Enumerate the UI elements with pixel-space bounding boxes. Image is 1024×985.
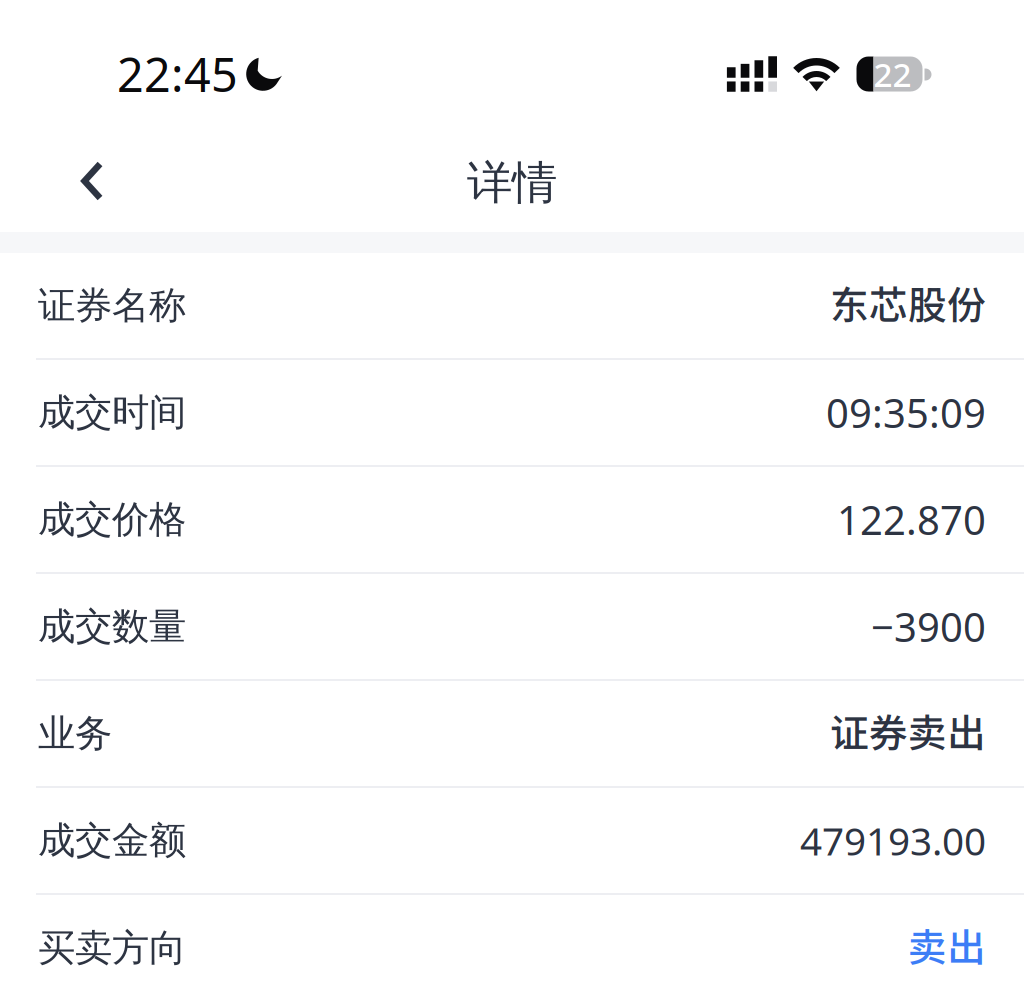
staticText: 详情 <box>467 155 557 211</box>
button[interactable]: 成交价格 <box>0 467 1024 572</box>
button[interactable]: 证券名称 <box>0 253 1024 358</box>
staticText: 22:45 <box>117 43 238 105</box>
staticText: 122.870 <box>837 493 986 546</box>
staticText: 买卖方向 <box>38 925 186 971</box>
staticText: 22 <box>873 52 911 96</box>
staticText: 卖出 <box>908 917 986 973</box>
staticText: 证券名称 <box>38 283 186 328</box>
button[interactable]: 成交时间 <box>0 360 1024 465</box>
button[interactable]: 成交数量 <box>0 574 1024 679</box>
button[interactable]: 业务 <box>0 681 1024 786</box>
button[interactable]: 成交金额 <box>0 788 1024 893</box>
button[interactable]: Back <box>63 144 121 218</box>
staticText: 成交时间 <box>38 390 186 435</box>
staticText: 09:35:09 <box>826 386 986 439</box>
staticText: 成交金额 <box>38 818 186 863</box>
staticText: 成交数量 <box>38 604 186 649</box>
staticText: 成交价格 <box>38 497 186 542</box>
button[interactable]: 买卖方向 <box>0 895 1024 977</box>
staticText: 业务 <box>38 711 112 756</box>
staticText: 证券卖出 <box>830 702 986 758</box>
staticText: 东芯股份 <box>830 274 986 330</box>
staticText: −3900 <box>871 600 986 653</box>
staticText: 479193.00 <box>800 815 986 866</box>
